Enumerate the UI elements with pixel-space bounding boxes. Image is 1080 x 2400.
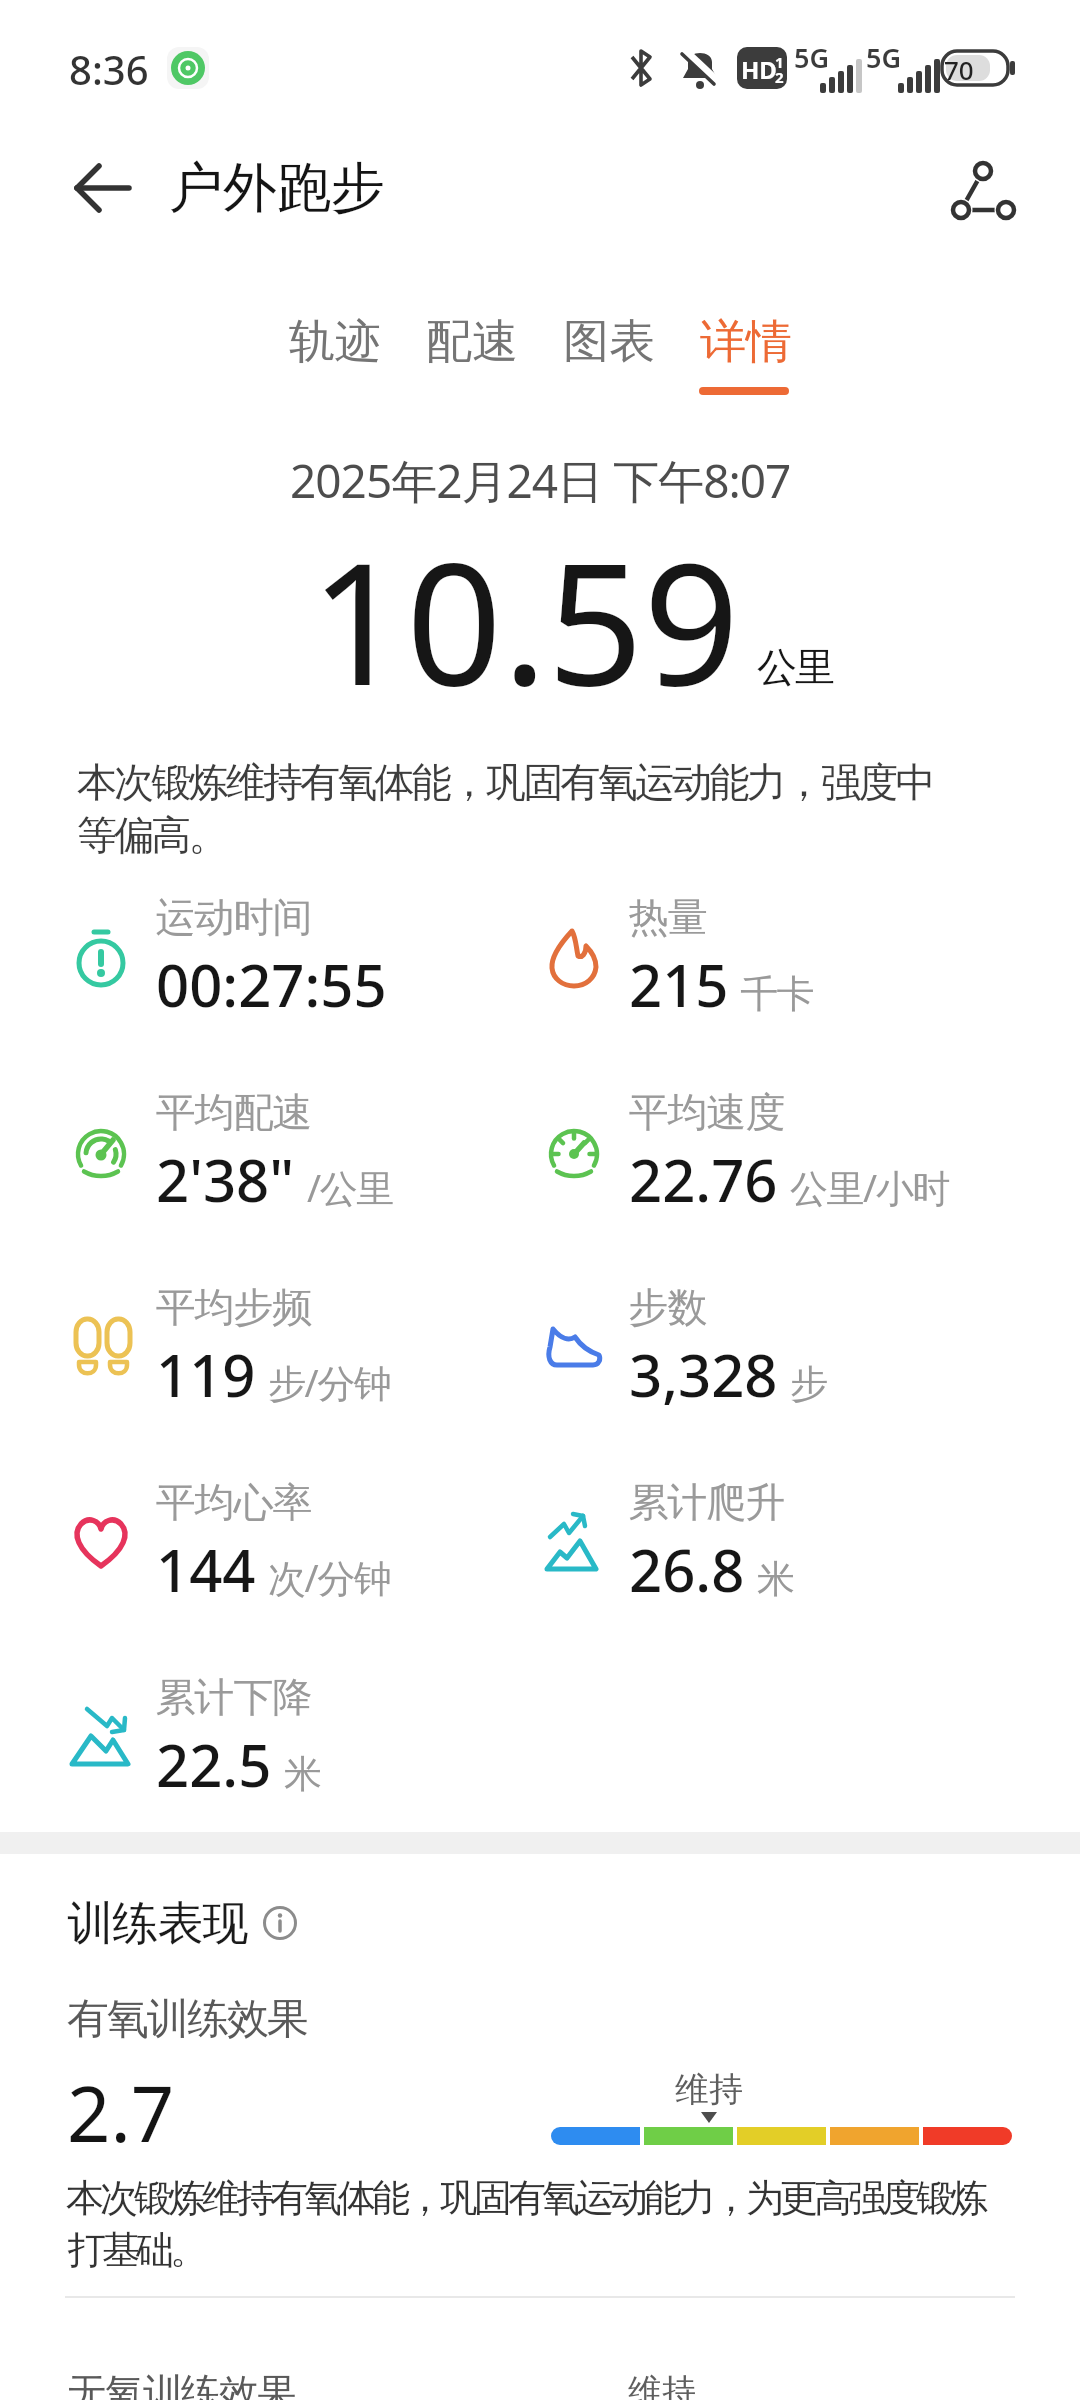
staticText: 无氧训练效果 <box>68 2368 296 2400</box>
staticText: 本次锻炼维持有氧体能，巩固有氧运动能力，强度中 等偏高。 <box>77 757 933 861</box>
staticText: 1 <box>775 52 784 72</box>
staticText: 千卡 <box>741 970 814 1018</box>
staticText: 米 <box>757 1555 794 1603</box>
staticText: /公里 <box>307 1161 393 1213</box>
staticText: 步/分钟 <box>268 1356 391 1408</box>
staticText: 5G <box>866 39 902 76</box>
staticText: 图表 <box>563 313 655 371</box>
staticText: 3,328 <box>629 1335 778 1414</box>
staticText: 2025年2月24日 下午8:07 <box>290 449 791 512</box>
staticText: 平均速度 <box>629 1087 785 1137</box>
staticText: 10.59 <box>310 505 740 734</box>
button[interactable]: 轨迹 <box>289 313 381 371</box>
staticText: 米 <box>284 1750 321 1798</box>
staticText: 累计爬升 <box>629 1477 785 1527</box>
staticText: 步 <box>790 1360 827 1408</box>
staticText: 本次锻炼维持有氧体能，巩固有氧运动能力，为更高强度锻炼 打基础。 <box>68 2174 986 2274</box>
staticText: 215 <box>629 945 729 1024</box>
staticText: 维持 <box>675 2068 743 2111</box>
staticText: 22.76 <box>629 1140 778 1219</box>
staticText: 144 <box>156 1530 256 1609</box>
staticText: 26.8 <box>629 1530 745 1609</box>
staticText: 有氧训练效果 <box>68 1993 308 2046</box>
staticText: 次/分钟 <box>268 1551 391 1603</box>
staticText: 训练表现 <box>68 1895 248 1953</box>
button[interactable] <box>66 151 140 225</box>
button[interactable]: 配速 <box>426 313 518 371</box>
staticText: 119 <box>156 1335 256 1414</box>
button[interactable] <box>259 1902 301 1944</box>
staticText: 详情 <box>700 313 792 371</box>
staticText: 2 <box>775 67 784 87</box>
staticText: 轨迹 <box>289 313 381 371</box>
staticText: 户外跑步 <box>169 154 385 222</box>
staticText: 平均配速 <box>156 1087 312 1137</box>
button[interactable]: 详情 <box>700 313 792 371</box>
staticText: 维持 <box>628 2370 696 2400</box>
staticText: 公里 <box>758 642 834 692</box>
staticText: 热量 <box>629 892 707 942</box>
staticText: 00:27:55 <box>156 945 387 1024</box>
staticText: 公里/小时 <box>790 1161 949 1213</box>
staticText: 2'38" <box>156 1140 295 1219</box>
staticText: 平均心率 <box>156 1477 312 1527</box>
button[interactable]: 图表 <box>563 313 655 371</box>
button[interactable] <box>940 154 1016 230</box>
staticText: 运动时间 <box>156 892 312 942</box>
staticText: 平均步频 <box>156 1282 312 1332</box>
staticText: 8:36 <box>69 42 149 96</box>
staticText: HD <box>741 53 777 86</box>
staticText: 22.5 <box>156 1725 272 1804</box>
staticText: 步数 <box>629 1282 707 1332</box>
staticText: 70 <box>944 52 974 87</box>
staticText: 2.7 <box>67 2061 175 2165</box>
staticText: 5G <box>794 39 830 76</box>
staticText: 累计下降 <box>156 1672 312 1722</box>
staticText: 配速 <box>426 313 518 371</box>
